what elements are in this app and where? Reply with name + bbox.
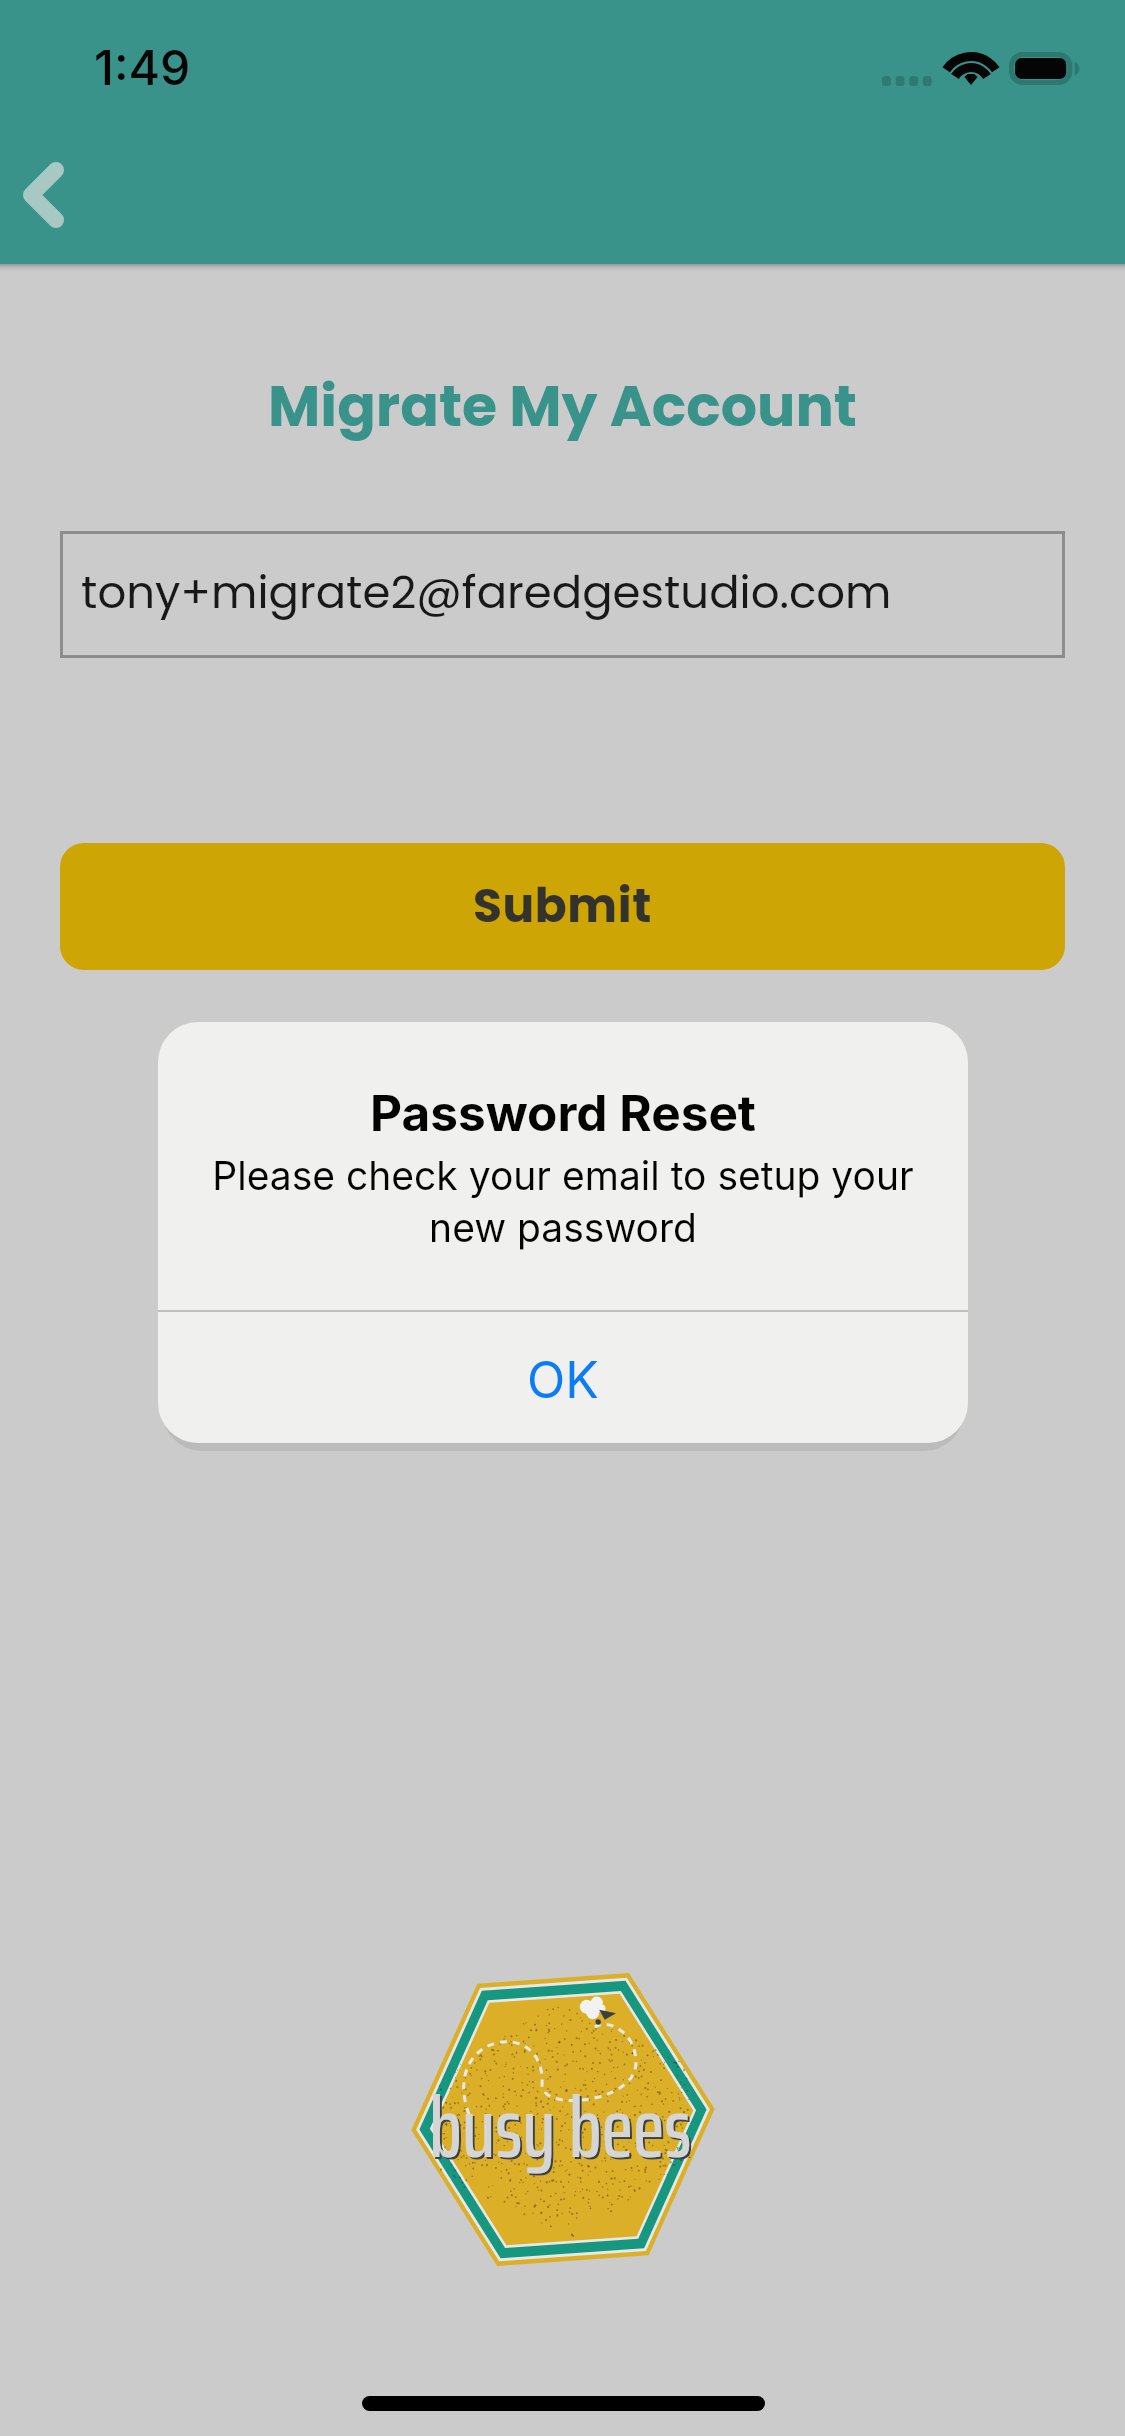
- staticText: Please check your email to setup your ne…: [182, 1152, 944, 1251]
- staticText: Password Reset: [182, 1083, 944, 1143]
- staticText: tony+migrate2@faredgestudio.com: [81, 561, 892, 624]
- button[interactable]: Back: [0, 135, 103, 255]
- staticText: busy bees: [431, 2063, 694, 2197]
- button[interactable]: OK: [158, 1312, 968, 1443]
- staticText: 1:49: [94, 38, 191, 96]
- staticText: Migrate My Account: [0, 366, 1125, 446]
- staticText: OK: [527, 1350, 599, 1410]
- button[interactable]: Submit: [60, 843, 1065, 970]
- staticText: busy bees: [429, 2061, 692, 2195]
- staticText: Submit: [473, 873, 652, 939]
- button[interactable]: tony+migrate2@faredgestudio.com: [60, 531, 1065, 658]
